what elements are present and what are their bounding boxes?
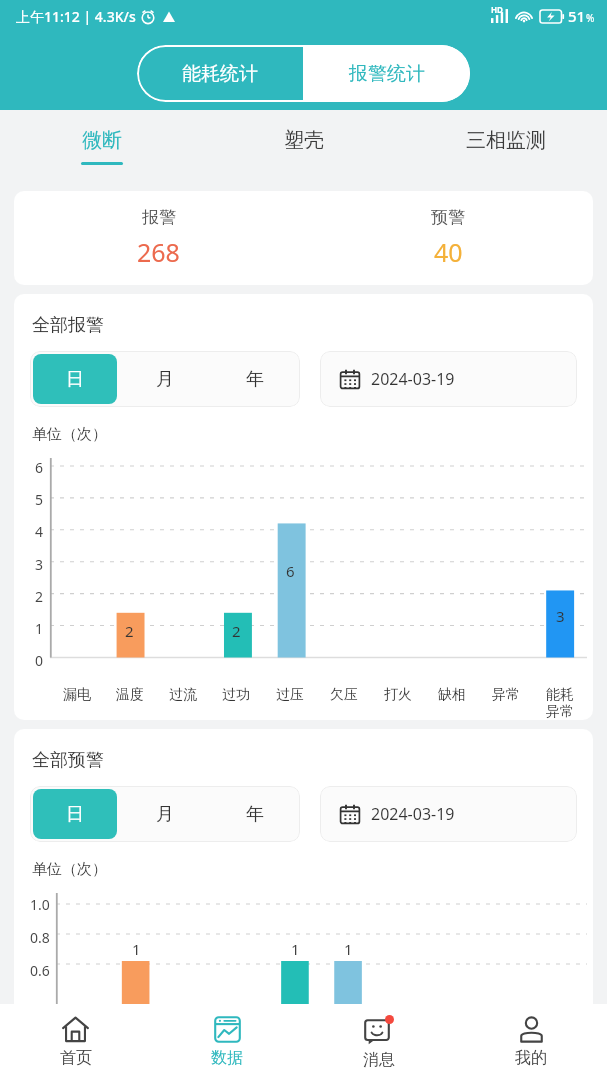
staticText: 0.6 — [30, 961, 50, 980]
staticText: 2 — [35, 587, 44, 606]
button[interactable]: 月 — [120, 351, 210, 407]
staticText: 268 — [137, 235, 180, 269]
staticText: 3 — [556, 606, 565, 626]
staticText: 漏电 — [63, 686, 91, 704]
staticText: 微断 — [82, 128, 122, 153]
button[interactable]: 日 — [33, 789, 117, 839]
button[interactable]: 报警 — [14, 191, 303, 285]
staticText: 2 — [125, 621, 134, 641]
staticText: 1.0 — [30, 895, 50, 914]
other: Messages — [364, 1015, 394, 1045]
other: Home — [62, 1016, 89, 1043]
staticText: 51 — [568, 6, 586, 26]
button[interactable]: Pick date — [320, 786, 577, 842]
staticText: 缺相 — [438, 686, 466, 704]
staticText: 打火 — [384, 686, 412, 704]
staticText: 月 — [156, 368, 174, 391]
staticText: 数据 — [211, 1048, 243, 1068]
staticText: 1 — [132, 939, 141, 959]
button[interactable]: Pick date — [320, 351, 577, 407]
staticText: 0.8 — [30, 928, 50, 947]
button[interactable]: Home — [0, 1004, 151, 1080]
staticText: 能耗统计 — [182, 62, 258, 86]
staticText: 全部报警 — [32, 314, 104, 337]
staticText: 异常 — [492, 686, 520, 704]
staticText: % — [586, 11, 595, 25]
staticText: 1 — [35, 619, 44, 638]
staticText: 过流 — [169, 686, 197, 704]
staticText: 4 — [35, 522, 44, 541]
staticText: 欠压 — [330, 686, 358, 704]
staticText: 5 — [35, 490, 44, 509]
staticText: 年 — [246, 803, 264, 826]
button[interactable]: 日 — [33, 354, 117, 404]
button[interactable]: 能耗统计 — [137, 45, 303, 102]
staticText: HD — [491, 4, 503, 15]
staticText: 塑壳 — [284, 128, 324, 153]
staticText: 三相监测 — [466, 128, 546, 153]
staticText: 1 — [344, 939, 353, 959]
staticText: 能耗 异常 — [546, 686, 574, 720]
staticText: 报警 — [142, 207, 176, 228]
other: Pick date — [340, 804, 360, 824]
staticText: 全部预警 — [32, 749, 104, 772]
staticText: 报警统计 — [349, 62, 425, 86]
button[interactable]: Messages — [303, 1004, 455, 1080]
button[interactable]: 预警 — [303, 191, 593, 285]
staticText: 6 — [35, 458, 44, 477]
button[interactable]: 月 — [120, 786, 210, 842]
staticText: 温度 — [116, 686, 144, 704]
other: Profile — [518, 1016, 545, 1043]
staticText: 3 — [35, 555, 44, 574]
staticText: 预警 — [431, 207, 465, 228]
button[interactable]: 三相监测 — [405, 110, 607, 182]
button[interactable]: 微断 — [0, 110, 203, 182]
staticText: 我的 — [515, 1048, 547, 1068]
staticText: 日 — [66, 368, 84, 391]
button[interactable]: Data — [151, 1004, 303, 1080]
staticText: 日 — [66, 803, 84, 826]
staticText: 月 — [156, 803, 174, 826]
button[interactable]: 报警统计 — [303, 45, 470, 102]
staticText: 上午11:12 | 4.3K/s — [16, 7, 136, 26]
button[interactable]: 塑壳 — [203, 110, 405, 182]
staticText: 40 — [434, 235, 463, 269]
button[interactable]: Profile — [455, 1004, 607, 1080]
staticText: 2024-03-19 — [371, 368, 455, 390]
staticText: 2 — [232, 621, 241, 641]
staticText: 单位（次） — [32, 860, 107, 879]
button[interactable]: 年 — [210, 786, 300, 842]
button[interactable]: 年 — [210, 351, 300, 407]
staticText: 0 — [35, 651, 44, 670]
staticText: 首页 — [60, 1048, 92, 1068]
other: Pick date — [340, 369, 360, 389]
staticText: 2024-03-19 — [371, 803, 455, 825]
staticText: 过功 — [222, 686, 250, 704]
staticText: 1 — [291, 939, 300, 959]
staticText: 消息 — [363, 1050, 395, 1070]
staticText: 过压 — [276, 686, 304, 704]
other: Data — [214, 1016, 241, 1043]
staticText: 6 — [286, 561, 295, 581]
staticText: 年 — [246, 368, 264, 391]
staticText: 单位（次） — [32, 425, 107, 444]
